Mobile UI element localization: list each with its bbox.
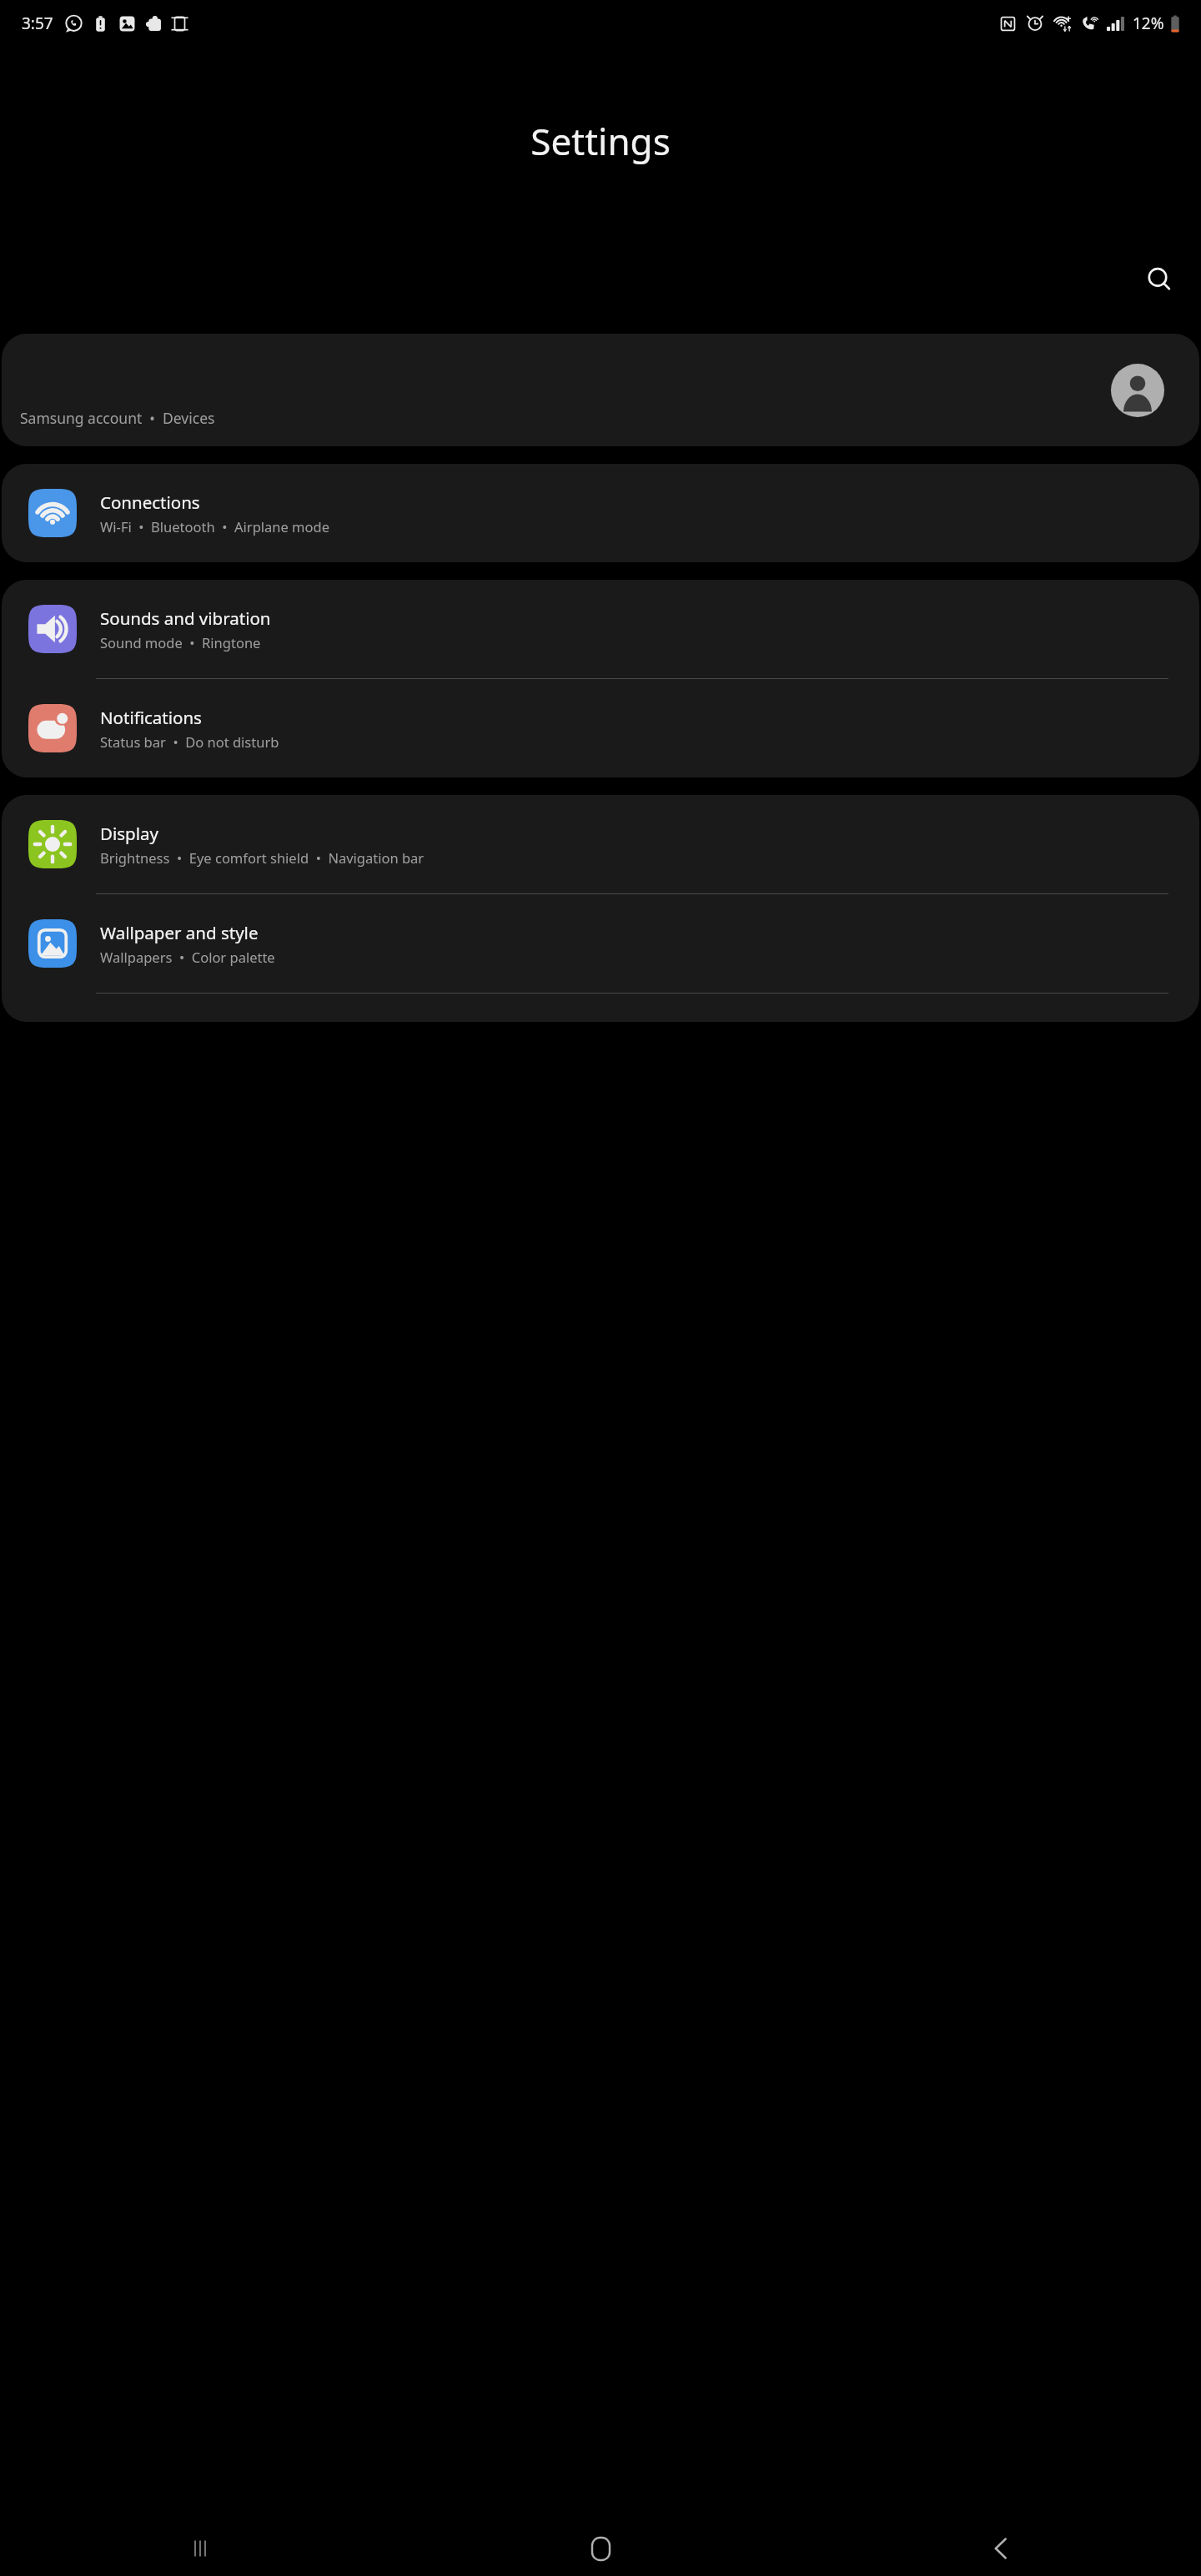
staticText: Wallpapers • Color palette	[100, 948, 275, 966]
button[interactable]: Samsung account • Devices	[2, 334, 1199, 446]
staticText: Connections	[100, 491, 200, 514]
staticText: Display	[100, 822, 158, 845]
button[interactable]: Back	[801, 2521, 1201, 2576]
staticText: Status bar • Do not disturb	[100, 732, 279, 751]
staticText: Sound mode • Ringtone	[100, 633, 261, 652]
staticText: Wi-Fi • Bluetooth • Airplane mode	[100, 517, 329, 536]
staticText: Brightness • Eye comfort shield • Naviga…	[100, 848, 425, 867]
staticText: Samsung account • Devices	[20, 408, 215, 428]
button[interactable]: Search settings	[1136, 256, 1183, 303]
staticText: Sounds and vibration	[100, 606, 271, 630]
button[interactable]: Home	[400, 2521, 801, 2576]
button[interactable]: Connections	[2, 464, 1199, 562]
button[interactable]: Recents	[0, 2521, 400, 2576]
button[interactable]: Sounds and vibration	[2, 580, 1199, 679]
staticText: Notifications	[100, 706, 202, 729]
staticText: 3:57	[22, 13, 53, 34]
staticText: 12%	[1133, 13, 1164, 34]
button[interactable]: Display	[2, 795, 1199, 894]
button[interactable]: Notifications	[2, 679, 1199, 777]
staticText: Settings	[530, 116, 671, 166]
button[interactable]: Wallpaper and style	[2, 894, 1199, 994]
staticText: Wallpaper and style	[100, 921, 259, 944]
